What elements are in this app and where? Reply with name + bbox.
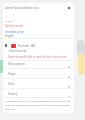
staticText: Pages: [8, 72, 16, 76]
staticText: Quick result: [5, 24, 23, 28]
staticText: Tools: [8, 82, 15, 86]
staticText: More options: [8, 62, 25, 66]
staticText: Some descript: [9, 49, 27, 53]
staticText: History: [8, 92, 18, 96]
button[interactable]: More options: [3, 63, 74, 73]
staticText: Search result title in red colour here m…: [8, 55, 67, 59]
staticText: translate page: [5, 30, 24, 34]
staticText: Lorem ipsum dolor sit a: [5, 6, 39, 10]
staticText: YouTube · 8M: [18, 44, 35, 48]
button[interactable]: Tools: [3, 83, 74, 93]
staticText: Lorem ipsum dolor sit amet consectetur a…: [5, 99, 72, 111]
button[interactable]: History: [3, 93, 74, 103]
button[interactable]: Pages: [3, 73, 74, 83]
staticText: English: [5, 34, 14, 38]
staticText: Source: [5, 19, 14, 22]
